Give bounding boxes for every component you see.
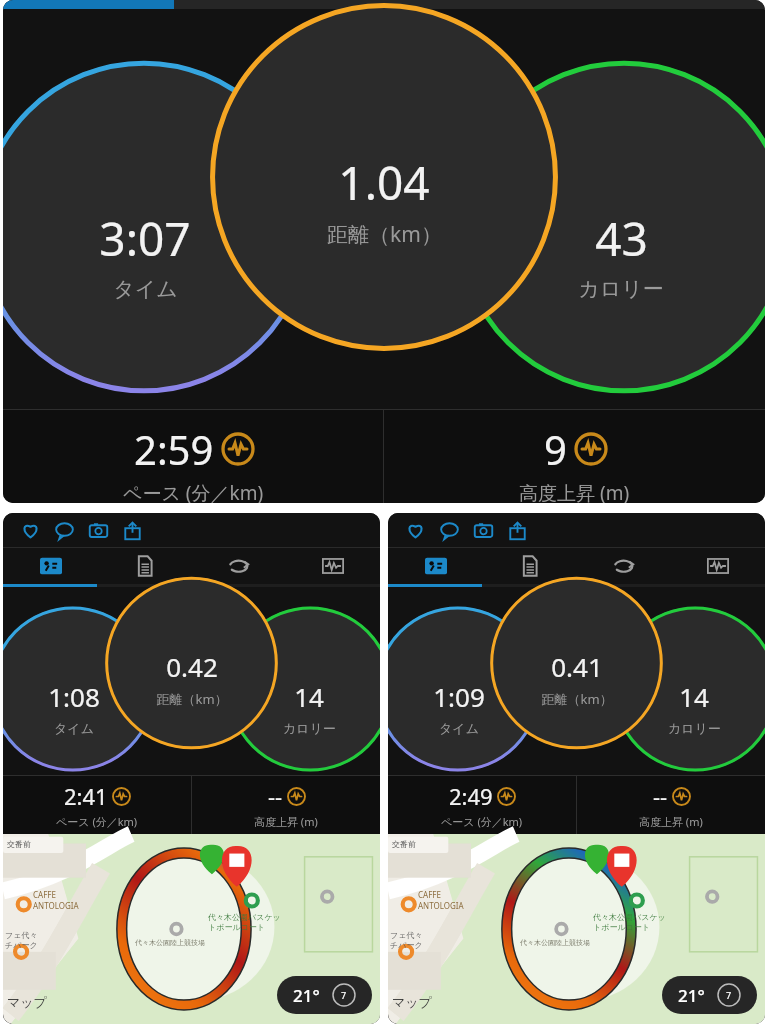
staticText: 2:59 [134,422,214,476]
button[interactable]: Share [115,513,149,547]
staticText: CAFFE ANTOLOGIA [418,889,464,911]
button[interactable]: CAFFE ANTOLOGIA [3,834,380,1024]
staticText: タイム [113,276,178,302]
staticText: 代々木公園陸上競技場 [520,938,590,947]
staticText: 7 [341,989,347,1001]
button[interactable]: Details [98,548,192,584]
staticText: 交番前 [7,839,31,849]
button[interactable]: 9 [384,410,765,503]
staticText: タイム [54,720,94,736]
staticText: 高度上昇 (m) [254,814,318,829]
button[interactable]: -- [192,776,380,834]
staticText: 交番前 [392,839,416,849]
button[interactable]: Charts [286,548,380,584]
staticText: 2:49 [449,781,493,811]
staticText: カロリー [578,276,664,302]
staticText: 21° [678,984,705,1007]
staticText: ペース (分／km) [441,814,523,829]
button[interactable]: CAFFE ANTOLOGIA [388,834,765,1024]
staticText: -- [268,781,283,811]
staticText: 3:07 [99,207,191,270]
button[interactable]: Details [483,548,577,584]
staticText: カロリー [283,720,336,736]
button[interactable]: 2:41 [3,776,191,834]
staticText: 14 [679,679,709,714]
staticText: -- [653,781,668,811]
staticText: 21° [293,984,320,1007]
staticText: 代々木公園バスケッ トボールコート [208,912,281,932]
staticText: マップ [7,994,47,1010]
staticText: 距離（km） [541,690,613,708]
staticText: 9 [544,422,567,476]
button[interactable]: Comment [432,513,466,547]
button[interactable]: 21° [662,976,757,1014]
button[interactable]: Laps [192,548,286,584]
button[interactable]: Comment [47,513,81,547]
staticText: CAFFE ANTOLOGIA [33,889,79,911]
button[interactable]: Photo [81,513,115,547]
staticText: 0.42 [166,649,218,684]
button[interactable]: 2:59 [3,410,383,503]
staticText: 1:08 [48,679,100,714]
staticText: 1.04 [338,151,430,214]
staticText: 1:09 [433,679,485,714]
staticText: フェ代々 チパーク [390,930,423,950]
staticText: 高度上昇 (m) [639,814,703,829]
staticText: 高度上昇 (m) [519,480,630,503]
staticText: フェ代々 チパーク [5,930,38,950]
staticText: 代々木公園バスケッ トボールコート [593,912,666,932]
staticText: 距離（km） [156,690,228,708]
staticText: 43 [595,207,648,270]
button[interactable]: Like [398,513,432,547]
button[interactable]: Like [13,513,47,547]
button[interactable]: Charts [671,548,765,584]
staticText: マップ [392,994,432,1010]
staticText: ペース (分／km) [56,814,138,829]
staticText: 代々木公園陸上競技場 [135,938,205,947]
staticText: 2:41 [64,781,108,811]
staticText: 0.41 [551,649,603,684]
staticText: タイム [439,720,479,736]
button[interactable]: -- [577,776,765,834]
button[interactable]: Dashboard [3,548,98,584]
staticText: ペース (分／km) [123,480,264,503]
button[interactable]: Share [500,513,534,547]
staticText: 14 [294,679,324,714]
staticText: 距離（km） [327,220,442,249]
staticText: 7 [726,989,732,1001]
button[interactable]: 21° [277,976,372,1014]
button[interactable]: 2:49 [388,776,576,834]
button[interactable]: Photo [466,513,500,547]
staticText: カロリー [668,720,721,736]
button[interactable]: Dashboard [388,548,483,584]
button[interactable]: Laps [577,548,671,584]
